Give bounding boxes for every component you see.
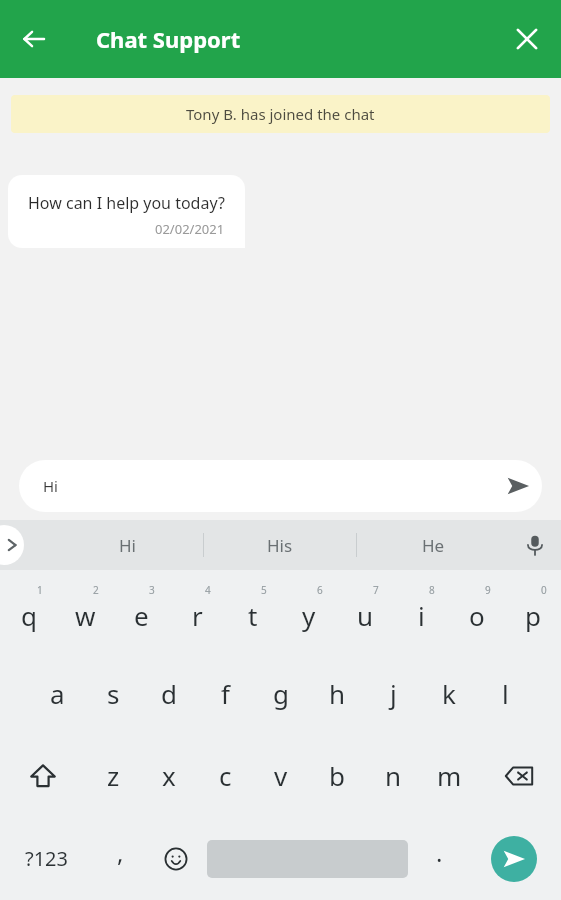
staticText: o — [469, 598, 485, 633]
button[interactable]: Close — [505, 17, 549, 61]
button[interactable]: 4 — [169, 570, 225, 652]
staticText: 3 — [149, 583, 155, 597]
staticText: s — [107, 676, 120, 711]
staticText: a — [50, 676, 65, 711]
staticText: w — [75, 598, 96, 633]
button[interactable]: Expand toolbar — [0, 525, 24, 565]
staticText: 7 — [373, 583, 379, 597]
button[interactable]: Hi — [19, 460, 542, 512]
staticText: k — [442, 676, 456, 711]
button[interactable]: . — [412, 817, 467, 900]
button[interactable]: f — [197, 652, 253, 734]
staticText: , — [117, 836, 124, 869]
staticText: h — [329, 676, 346, 711]
button[interactable]: k — [421, 652, 477, 734]
button[interactable]: Send — [494, 462, 542, 510]
button[interactable]: Space — [203, 817, 412, 900]
staticText: 1 — [37, 583, 43, 597]
staticText: 2 — [93, 583, 99, 597]
staticText: 8 — [429, 583, 435, 597]
staticText: 4 — [205, 583, 211, 597]
button[interactable]: z — [85, 734, 141, 817]
button[interactable]: c — [197, 734, 253, 817]
button[interactable]: 1 — [0, 570, 57, 652]
staticText: He — [422, 534, 445, 557]
staticText: t — [248, 598, 258, 633]
staticText: 5 — [261, 583, 267, 597]
staticText: i — [418, 598, 425, 633]
button[interactable]: 7 — [337, 570, 393, 652]
staticText: b — [329, 758, 345, 793]
button[interactable]: l — [477, 652, 533, 734]
staticText: His — [267, 534, 293, 557]
staticText: Tony B. has joined the chat — [186, 104, 375, 124]
staticText: Hi — [119, 534, 136, 557]
button[interactable]: d — [141, 652, 197, 734]
staticText: v — [274, 758, 288, 793]
button[interactable]: 0 — [505, 570, 561, 652]
button[interactable]: m — [421, 734, 477, 817]
button[interactable]: 5 — [225, 570, 281, 652]
staticText: z — [107, 758, 120, 793]
staticText: x — [162, 758, 176, 793]
staticText: e — [134, 598, 149, 633]
button[interactable]: Hi — [52, 520, 203, 570]
staticText: l — [502, 676, 509, 711]
staticText: . — [436, 836, 443, 869]
button[interactable]: Emoji — [148, 817, 203, 900]
staticText: g — [273, 676, 289, 711]
button[interactable]: j — [365, 652, 421, 734]
button[interactable]: 3 — [113, 570, 169, 652]
button[interactable]: 8 — [393, 570, 449, 652]
staticText: ?123 — [25, 845, 68, 872]
button[interactable]: Shift — [0, 734, 85, 817]
staticText: 02/02/2021 — [155, 220, 225, 238]
button[interactable]: , — [93, 817, 148, 900]
staticText: d — [161, 676, 177, 711]
staticText: f — [221, 676, 230, 711]
button[interactable]: His — [204, 520, 356, 570]
button[interactable]: ?123 — [0, 817, 93, 900]
button[interactable]: He — [357, 520, 509, 570]
button[interactable]: 2 — [57, 570, 113, 652]
staticText: n — [385, 758, 402, 793]
button[interactable]: 6 — [281, 570, 337, 652]
button[interactable]: h — [309, 652, 365, 734]
staticText: Chat Support — [96, 24, 241, 54]
button[interactable]: 9 — [449, 570, 505, 652]
staticText: c — [219, 758, 232, 793]
button[interactable]: Send message — [467, 817, 561, 900]
staticText: r — [192, 598, 203, 633]
staticText: q — [21, 598, 37, 633]
staticText: y — [302, 598, 316, 633]
staticText: 6 — [317, 583, 323, 597]
button[interactable]: Backspace — [477, 734, 561, 817]
button[interactable]: n — [365, 734, 421, 817]
staticText: p — [525, 598, 541, 633]
button[interactable]: s — [85, 652, 141, 734]
staticText: How can I help you today? — [28, 192, 225, 214]
button[interactable]: g — [253, 652, 309, 734]
staticText: 0 — [541, 583, 547, 597]
button[interactable]: v — [253, 734, 309, 817]
staticText: Hi — [43, 476, 494, 496]
button[interactable]: a — [29, 652, 85, 734]
staticText: u — [357, 598, 374, 633]
button[interactable]: b — [309, 734, 365, 817]
staticText: j — [390, 676, 397, 711]
button[interactable]: x — [141, 734, 197, 817]
button[interactable]: How can I help you today? — [8, 175, 245, 248]
staticText: m — [437, 758, 462, 793]
button[interactable]: Voice input — [509, 520, 561, 570]
staticText: 9 — [485, 583, 491, 597]
button[interactable]: Back — [12, 17, 56, 61]
